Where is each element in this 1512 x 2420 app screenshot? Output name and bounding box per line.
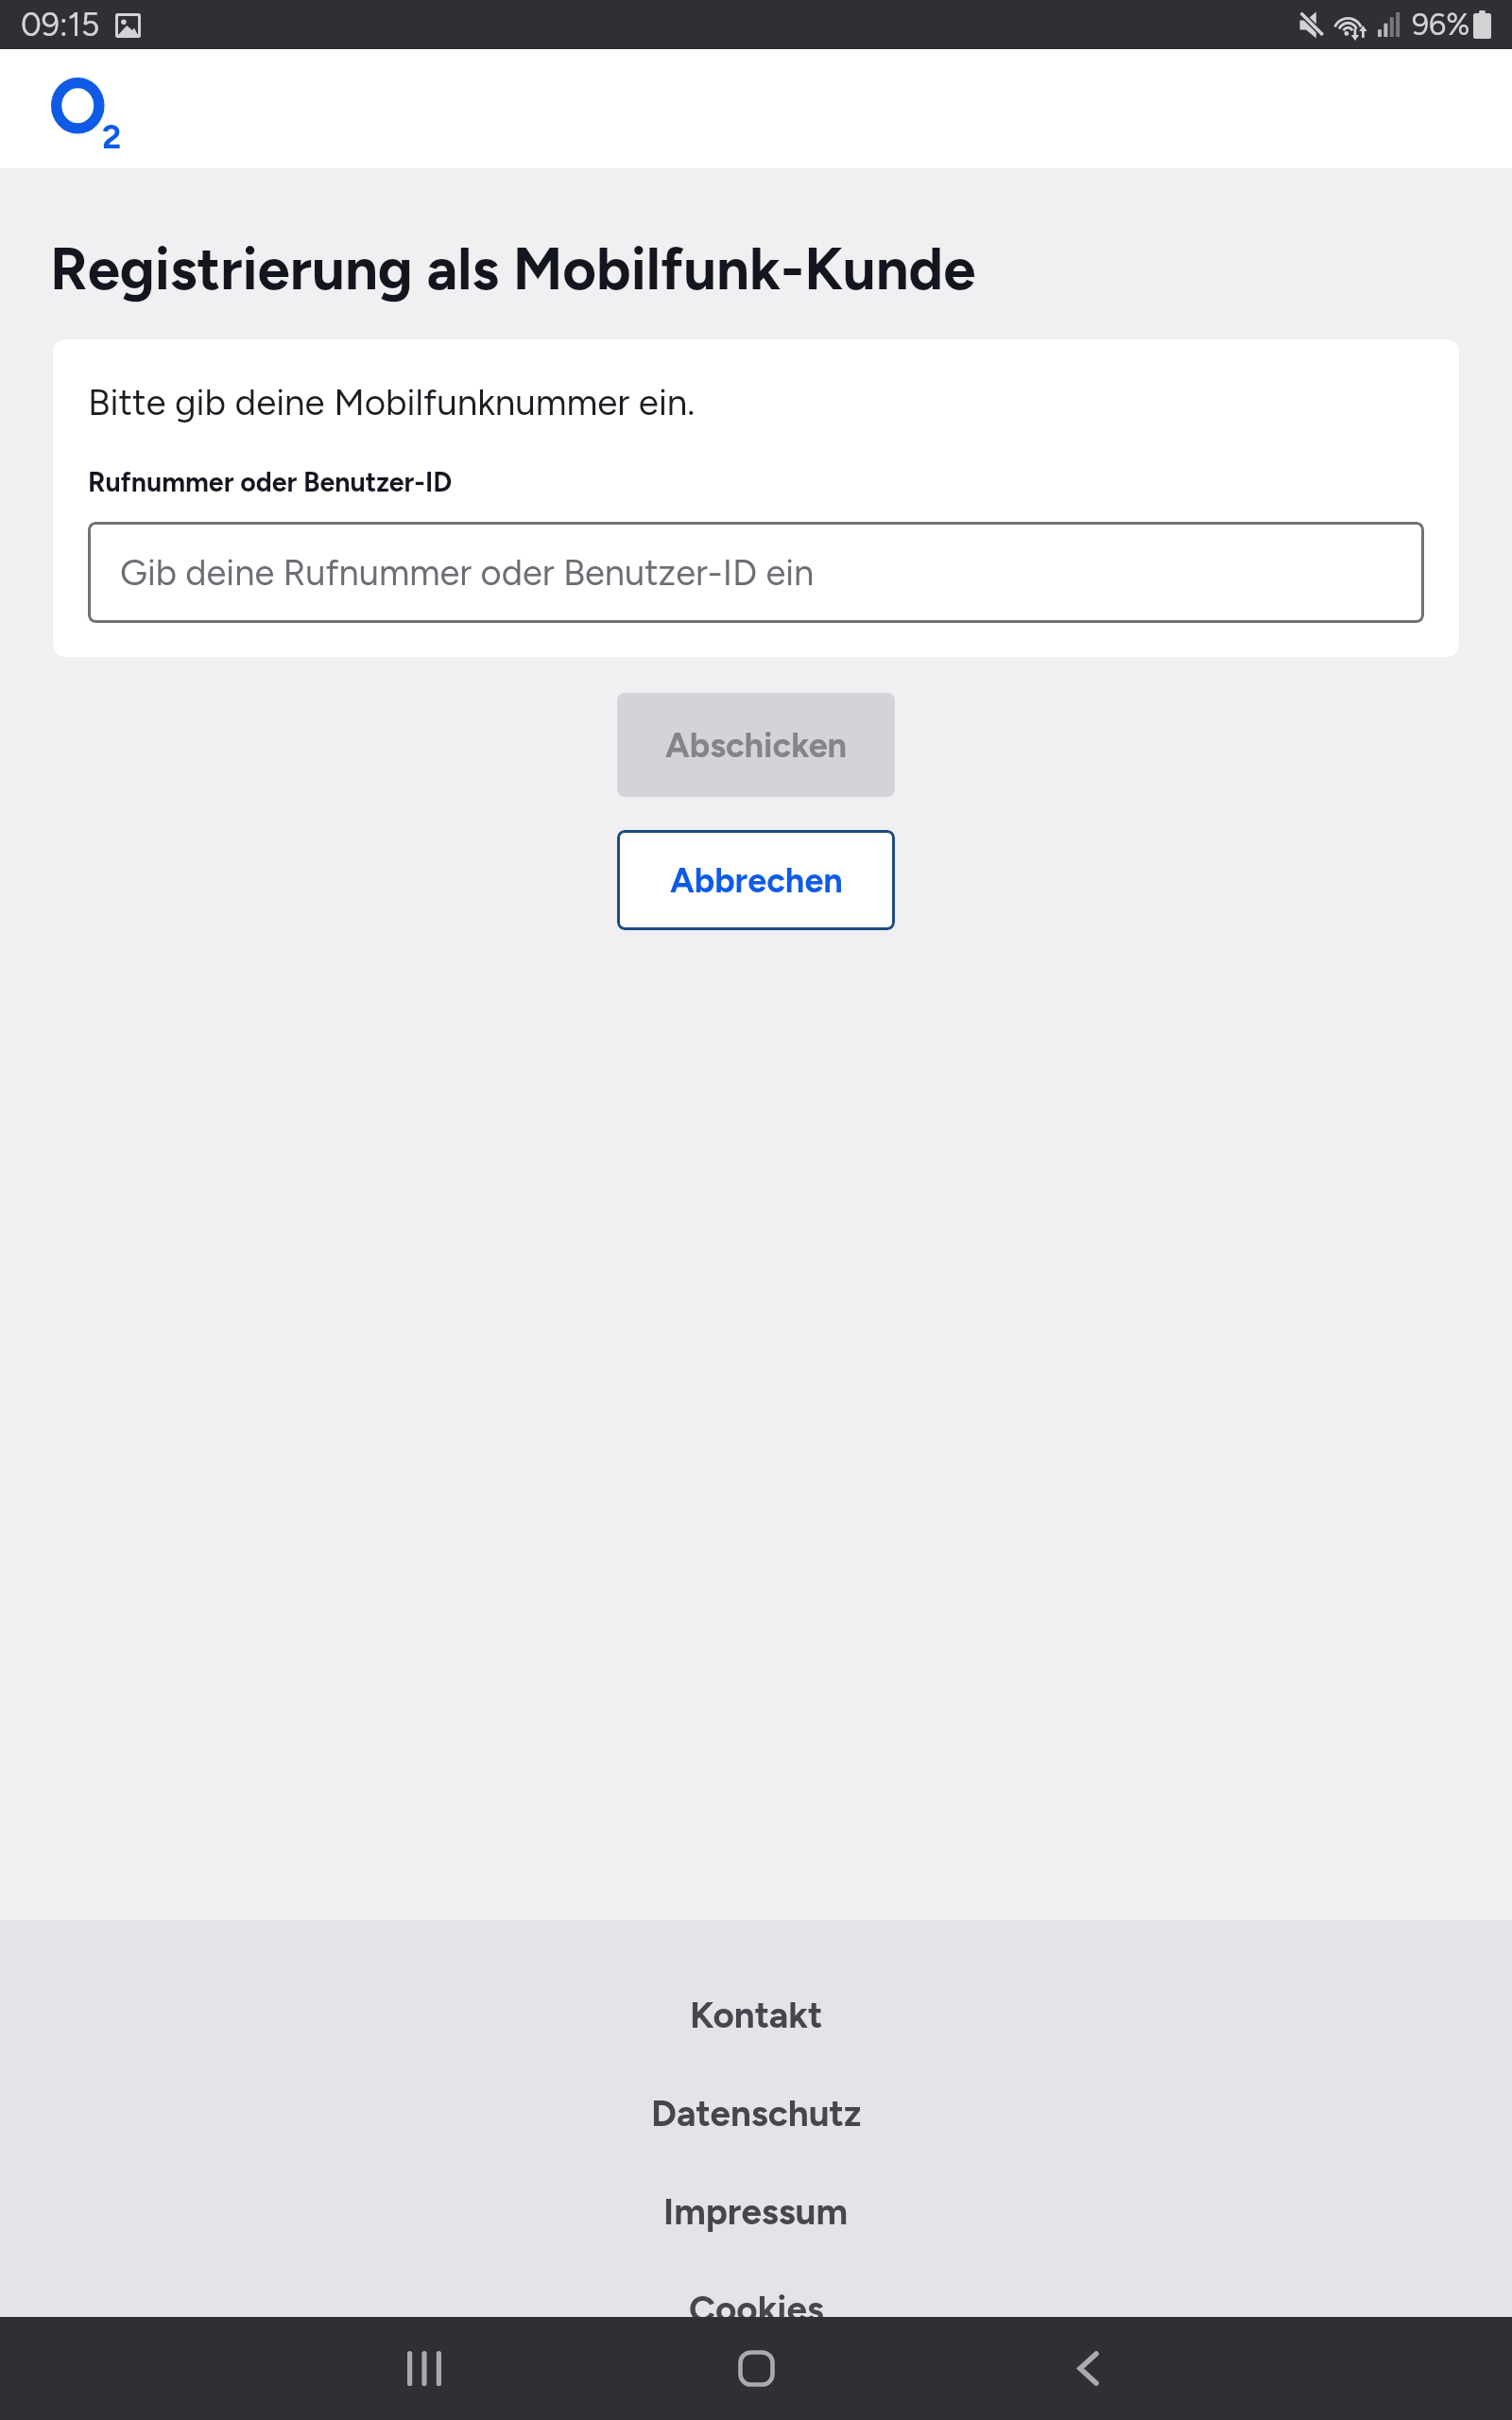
button[interactable]: Recent apps: [372, 2317, 476, 2420]
button[interactable]: Home: [704, 2317, 808, 2420]
staticText: Bitte gib deine Mobilfunknummer ein.: [88, 380, 696, 423]
button[interactable]: Abschicken: [617, 693, 895, 797]
staticText: Kontakt: [690, 1993, 823, 2036]
button[interactable]: Back: [1036, 2317, 1140, 2420]
staticText: Cookies: [689, 2287, 824, 2317]
staticText: 09:15: [21, 6, 100, 44]
button[interactable]: Abbrechen: [617, 830, 895, 930]
staticText: 96%: [1412, 7, 1470, 43]
staticText: 2: [102, 117, 122, 157]
staticText: Datenschutz: [651, 2091, 862, 2135]
button[interactable]: Datenschutz: [0, 2090, 1512, 2135]
button[interactable]: Kontakt: [0, 1992, 1512, 2036]
staticText: Gib deine Rufnummer oder Benutzer-ID ein: [120, 551, 815, 595]
staticText: Abbrechen: [670, 860, 843, 901]
staticText: Impressum: [663, 2189, 849, 2233]
button[interactable]: Cookies: [0, 2287, 1512, 2317]
staticText: Abschicken: [665, 725, 848, 766]
button[interactable]: Impressum: [0, 2188, 1512, 2233]
staticText: Registrierung als Mobilfunk-Kunde: [50, 234, 976, 304]
staticText: Rufnummer oder Benutzer-ID: [88, 466, 453, 498]
button[interactable]: Gib deine Rufnummer oder Benutzer-ID ein: [88, 522, 1424, 623]
